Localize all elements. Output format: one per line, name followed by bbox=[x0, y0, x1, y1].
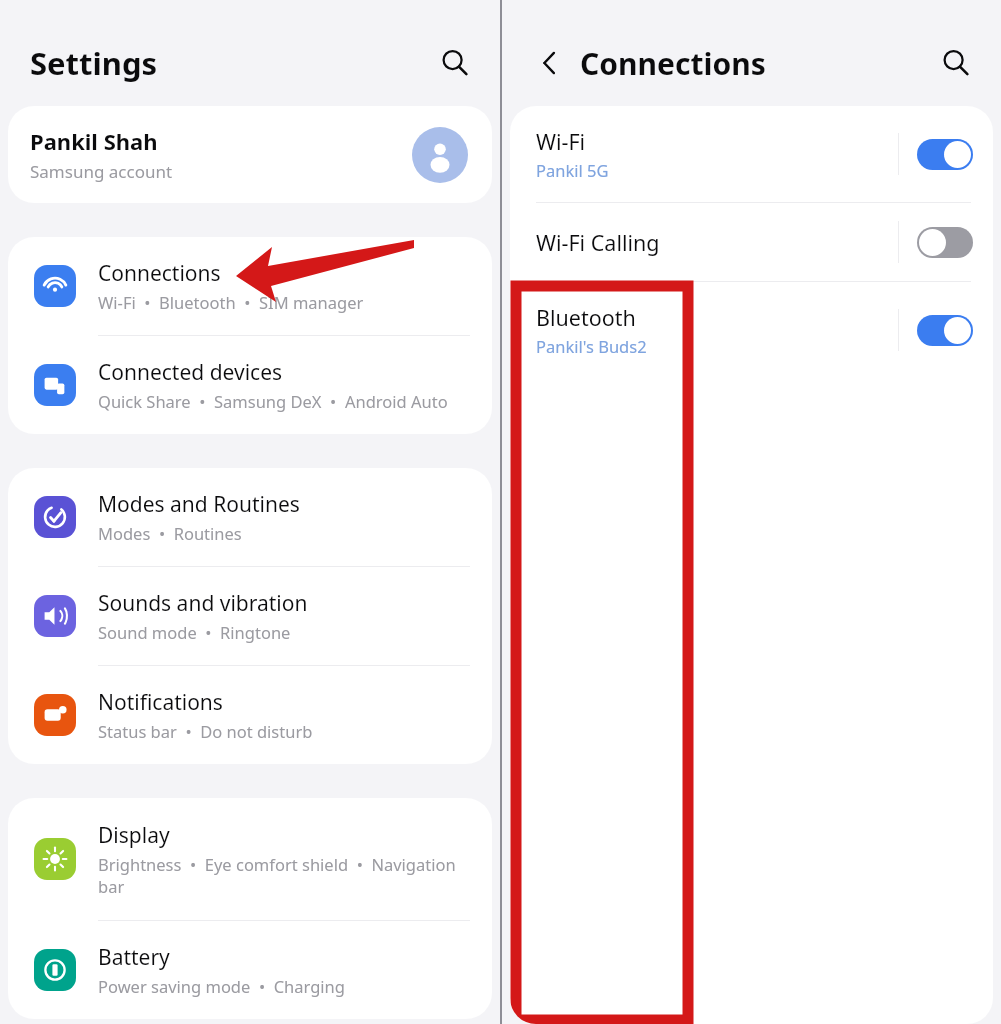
staticText: Connections bbox=[580, 43, 766, 84]
button[interactable]: Wi-Fi Calling toggle bbox=[917, 227, 973, 258]
staticText: Sounds and vibration bbox=[98, 589, 308, 618]
staticText: Connected devices bbox=[98, 358, 283, 387]
staticText: Power saving mode • Charging bbox=[98, 975, 345, 997]
button[interactable]: Bluetooth toggle bbox=[917, 315, 973, 346]
staticText: Pankil's Buds2 bbox=[536, 335, 647, 357]
staticText: Status bar • Do not disturb bbox=[98, 720, 313, 742]
staticText: Settings bbox=[30, 42, 158, 84]
staticText: Modes and Routines bbox=[98, 490, 300, 519]
staticText: Sound mode • Ringtone bbox=[98, 621, 291, 643]
staticText: Samsung account bbox=[30, 160, 173, 183]
staticText: Bluetooth bbox=[536, 303, 636, 332]
button[interactable]: Connected devices bbox=[8, 336, 492, 434]
button[interactable]: Wi-Fi bbox=[510, 106, 993, 202]
button[interactable]: Search bbox=[929, 36, 983, 90]
staticText: Brightness • Eye comfort shield • Naviga… bbox=[98, 853, 468, 897]
button[interactable]: Sounds and vibration bbox=[8, 567, 492, 665]
button[interactable]: Back bbox=[526, 39, 574, 87]
button[interactable]: Notifications bbox=[8, 666, 492, 764]
button[interactable]: Connections bbox=[8, 237, 492, 335]
staticText: Wi-Fi Calling bbox=[536, 228, 660, 257]
button[interactable]: Display bbox=[8, 798, 492, 920]
button[interactable]: Battery bbox=[8, 921, 492, 1019]
staticText: Connections bbox=[98, 259, 221, 288]
staticText: Pankil Shah bbox=[30, 126, 158, 156]
button[interactable]: Pankil Shah bbox=[8, 106, 492, 203]
staticText: Modes • Routines bbox=[98, 522, 242, 544]
button[interactable]: Modes and Routines bbox=[8, 468, 492, 566]
staticText: Quick Share • Samsung DeX • Android Auto bbox=[98, 390, 448, 412]
staticText: Notifications bbox=[98, 688, 223, 717]
button[interactable]: Bluetooth bbox=[510, 282, 993, 378]
staticText: Display bbox=[98, 821, 170, 850]
button[interactable]: Wi-Fi toggle bbox=[917, 139, 973, 170]
staticText: Wi-Fi bbox=[536, 127, 586, 156]
button[interactable]: Search bbox=[428, 36, 482, 90]
staticText: Battery bbox=[98, 943, 170, 972]
button[interactable]: Wi-Fi Calling bbox=[510, 203, 993, 281]
staticText: Pankil 5G bbox=[536, 159, 609, 181]
staticText: Wi-Fi • Bluetooth • SIM manager bbox=[98, 291, 364, 313]
